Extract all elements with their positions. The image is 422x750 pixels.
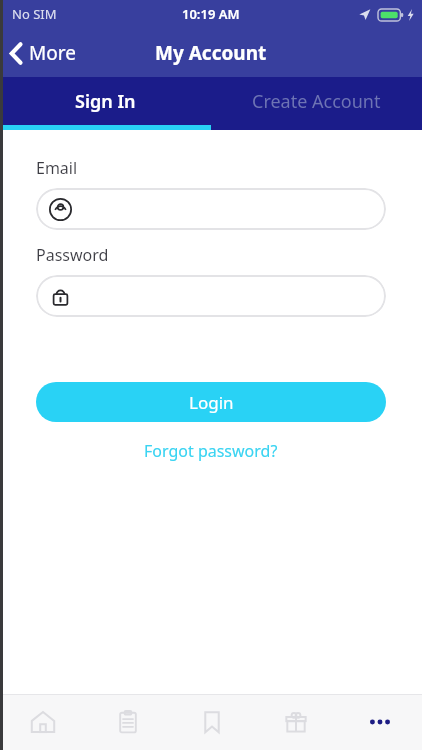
- button[interactable]: Password: [36, 275, 386, 317]
- staticText: Sign In: [75, 89, 136, 114]
- staticText: No SIM: [12, 5, 57, 23]
- staticText: Email: [36, 157, 78, 179]
- button[interactable]: Home: [0, 695, 85, 750]
- button[interactable]: Rewards: [254, 695, 338, 750]
- button[interactable]: Create Account: [211, 77, 422, 125]
- staticText: Create Account: [252, 89, 381, 114]
- staticText: Password: [36, 244, 109, 266]
- button[interactable]: Bookmarks: [170, 695, 254, 750]
- button[interactable]: Email: [36, 188, 386, 230]
- staticText: Forgot password?: [144, 440, 278, 462]
- button[interactable]: Sign In: [0, 77, 211, 125]
- staticText: 10:19 AM: [182, 5, 240, 23]
- staticText: More: [29, 40, 76, 66]
- button[interactable]: Back to More: [0, 34, 88, 72]
- button[interactable]: Orders: [85, 695, 170, 750]
- staticText: My Account: [155, 40, 267, 66]
- staticText: Login: [189, 391, 234, 414]
- button[interactable]: Login: [36, 382, 386, 422]
- button[interactable]: Forgot password?: [136, 436, 286, 466]
- button[interactable]: More: [338, 695, 422, 750]
